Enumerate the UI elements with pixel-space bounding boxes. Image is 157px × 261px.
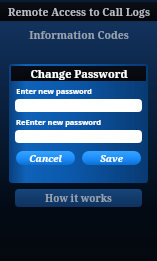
button[interactable]: Password input — [15, 130, 142, 143]
button[interactable]: Information Codes — [0, 21, 157, 49]
button[interactable]: Save — [82, 151, 141, 165]
staticText: Save — [100, 152, 123, 165]
staticText: Cancel — [29, 152, 62, 165]
button[interactable]: Password input — [15, 99, 142, 112]
staticText: How it works — [45, 191, 112, 205]
staticText: Enter new password — [16, 86, 92, 96]
staticText: Information Codes — [29, 28, 129, 42]
button[interactable]: How it works — [15, 189, 142, 207]
staticText: Change Password — [30, 66, 128, 81]
button[interactable]: Cancel — [16, 151, 75, 165]
staticText: Remote Access to Call Logs — [8, 5, 150, 19]
staticText: ReEnter new password — [16, 117, 101, 127]
